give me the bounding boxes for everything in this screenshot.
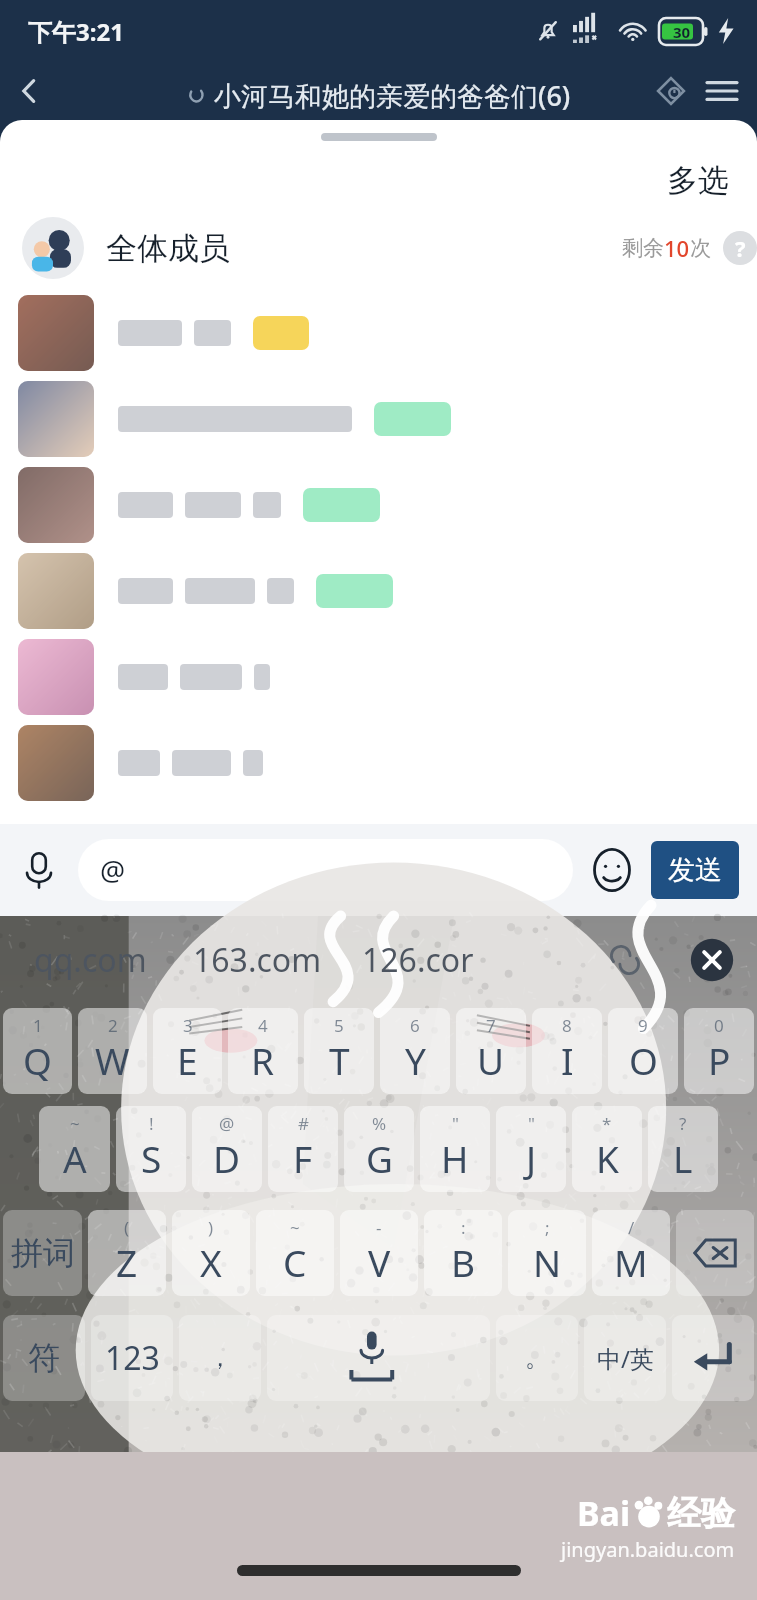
staticText: @: [219, 1112, 235, 1135]
button[interactable]: ?: [648, 1106, 718, 1192]
button[interactable]: [0, 720, 757, 806]
staticText: /: [628, 1216, 635, 1239]
button[interactable]: 全体成员: [0, 206, 757, 290]
button[interactable]: 4: [228, 1008, 298, 1094]
button[interactable]: Space: [267, 1315, 490, 1401]
staticText: Y: [405, 1035, 426, 1085]
staticText: 8: [562, 1014, 572, 1037]
button[interactable]: Enter: [672, 1315, 754, 1401]
staticText: 1: [33, 1014, 43, 1037]
button[interactable]: Group info: [643, 63, 699, 119]
button[interactable]: -: [340, 1210, 418, 1296]
button[interactable]: 符: [3, 1315, 85, 1401]
staticText: H: [441, 1133, 469, 1183]
button[interactable]: ~: [39, 1106, 110, 1192]
staticText: 次: [690, 235, 711, 261]
staticText: V: [368, 1237, 391, 1287]
button[interactable]: 1: [3, 1008, 72, 1094]
staticText: A: [63, 1133, 87, 1183]
staticText: ?: [735, 233, 746, 263]
button[interactable]: 163.com: [193, 938, 322, 982]
button[interactable]: 123: [91, 1315, 173, 1401]
button[interactable]: Close keyboard: [685, 933, 739, 987]
staticText: P: [708, 1035, 731, 1085]
button[interactable]: 拼词: [3, 1210, 82, 1296]
button[interactable]: ): [172, 1210, 250, 1296]
button[interactable]: #: [268, 1106, 338, 1192]
button[interactable]: Menu: [693, 62, 751, 120]
staticText: 6: [410, 1014, 420, 1037]
button[interactable]: Back: [0, 62, 58, 120]
staticText: O: [629, 1035, 658, 1085]
button[interactable]: ;: [508, 1210, 586, 1296]
staticText: F: [293, 1133, 313, 1183]
button[interactable]: %: [344, 1106, 414, 1192]
staticText: X: [200, 1237, 222, 1287]
staticText: 7: [486, 1014, 496, 1037]
button[interactable]: 发送: [651, 841, 739, 899]
button[interactable]: *: [572, 1106, 642, 1192]
staticText: I: [561, 1035, 574, 1085]
staticText: 发送: [668, 853, 722, 887]
staticText: 9: [638, 1014, 648, 1037]
staticText: 4: [258, 1014, 268, 1037]
button[interactable]: Emoji: [573, 831, 651, 909]
button[interactable]: 0: [684, 1008, 754, 1094]
staticText: M: [614, 1237, 648, 1287]
staticText: ): [208, 1216, 214, 1239]
staticText: 30: [673, 22, 691, 42]
button[interactable]: Help: [723, 231, 757, 265]
button[interactable]: [0, 462, 757, 548]
button[interactable]: 126.cor: [362, 938, 474, 982]
staticText: 0: [714, 1014, 724, 1037]
button[interactable]: 多选: [667, 161, 729, 200]
staticText: 剩余: [622, 235, 664, 261]
button[interactable]: @: [192, 1106, 262, 1192]
button[interactable]: 5: [304, 1008, 374, 1094]
button[interactable]: 9: [608, 1008, 678, 1094]
button[interactable]: Backspace: [676, 1210, 754, 1296]
staticText: %: [372, 1112, 387, 1135]
staticText: 5: [334, 1014, 344, 1037]
button[interactable]: @: [78, 839, 573, 901]
button[interactable]: Clipboard: [599, 934, 651, 986]
button[interactable]: !: [116, 1106, 186, 1192]
button[interactable]: [0, 290, 757, 376]
staticText: ": [452, 1112, 459, 1135]
button[interactable]: [0, 634, 757, 720]
staticText: @: [100, 851, 126, 889]
button[interactable]: :: [424, 1210, 502, 1296]
staticText: :: [461, 1216, 466, 1239]
staticText: 10: [664, 233, 690, 263]
button[interactable]: (: [88, 1210, 166, 1296]
button[interactable]: 2: [78, 1008, 147, 1094]
staticText: ~: [70, 1112, 80, 1135]
staticText: (: [124, 1216, 130, 1239]
staticText: -: [376, 1216, 382, 1239]
staticText: B: [451, 1237, 476, 1287]
staticText: jingyan.baidu.com: [561, 1536, 735, 1563]
staticText: 符: [28, 1338, 60, 1378]
staticText: T: [329, 1035, 350, 1085]
button[interactable]: 3: [153, 1008, 222, 1094]
button[interactable]: /: [592, 1210, 670, 1296]
staticText: *: [602, 1112, 612, 1135]
staticText: !: [149, 1112, 154, 1135]
button[interactable]: ~: [256, 1210, 334, 1296]
staticText: 小河马和她的亲爱的爸爸们(6): [214, 77, 571, 114]
button[interactable]: 8: [532, 1008, 602, 1094]
button[interactable]: 中/英: [584, 1315, 666, 1401]
staticText: 。: [525, 1343, 549, 1373]
button[interactable]: ": [420, 1106, 490, 1192]
button[interactable]: 7: [456, 1008, 526, 1094]
button[interactable]: 6: [380, 1008, 450, 1094]
button[interactable]: [0, 548, 757, 634]
staticText: 下午3:21: [28, 15, 124, 48]
button[interactable]: 。: [496, 1315, 578, 1401]
button[interactable]: ": [496, 1106, 566, 1192]
button[interactable]: [0, 376, 757, 462]
button[interactable]: Voice input: [0, 831, 78, 909]
button[interactable]: ，: [179, 1315, 261, 1401]
button[interactable]: qq.com: [34, 938, 147, 982]
staticText: ~: [290, 1216, 300, 1239]
